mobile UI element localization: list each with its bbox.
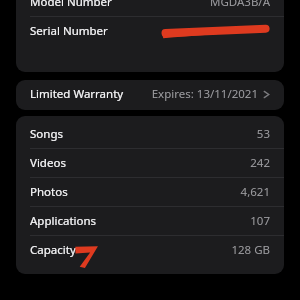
button[interactable]: Serial Number — [16, 17, 284, 45]
staticText: MGDA3B/A — [210, 0, 270, 10]
staticText: 107 — [250, 213, 270, 229]
staticText: Limited Warranty — [30, 86, 124, 102]
staticText: Applications — [30, 213, 97, 229]
other: Hand drawn arrow marker — [74, 242, 100, 268]
staticText: Songs — [30, 126, 63, 142]
staticText: 53 — [256, 126, 270, 142]
button[interactable]: Limited Warranty — [16, 80, 284, 108]
staticText: Videos — [30, 155, 66, 171]
other: Redacted serial number — [160, 23, 270, 39]
staticText: 242 — [250, 155, 270, 171]
button[interactable]: Videos — [16, 149, 284, 177]
staticText: Expires: 13/11/2021 — [151, 86, 258, 102]
staticText: Serial Number — [30, 23, 108, 39]
button[interactable]: Model Number — [16, 0, 284, 16]
button[interactable]: Limited Warranty — [16, 80, 284, 110]
button[interactable]: Capacity — [16, 236, 284, 264]
button[interactable]: Songs — [16, 120, 284, 148]
staticText: Capacity — [30, 242, 76, 258]
staticText: Model Number — [30, 0, 112, 10]
button[interactable]: Photos — [16, 178, 284, 206]
button[interactable]: Applications — [16, 207, 284, 235]
staticText: 4,621 — [240, 184, 270, 200]
staticText: Photos — [30, 184, 68, 200]
other: Open — [263, 89, 270, 100]
staticText: 128 GB — [231, 242, 270, 258]
